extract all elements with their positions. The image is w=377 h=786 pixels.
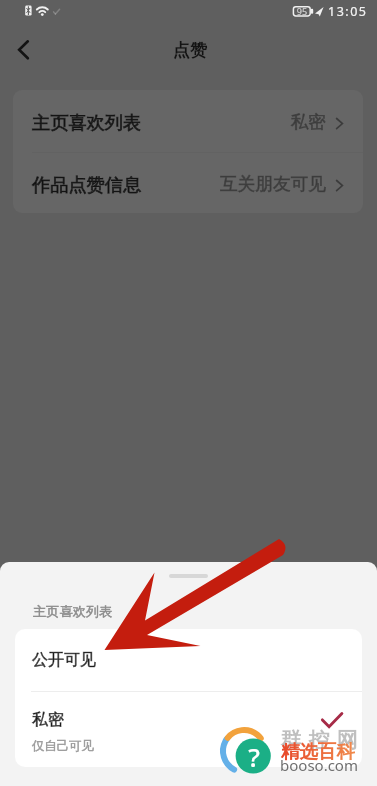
staticText: 主页喜欢列表 (33, 603, 113, 620)
button[interactable]: 公开可见 (15, 629, 362, 691)
button[interactable]: 私密 (15, 692, 362, 767)
staticText: 主页喜欢列表 (32, 111, 142, 134)
staticText: 仅自己可见 (32, 738, 94, 753)
staticText: 私密 (126, 111, 326, 133)
staticText: 点赞 (110, 39, 270, 61)
staticText: 群控网 (277, 727, 361, 753)
button[interactable]: Back (1, 27, 45, 71)
staticText: 私密 (32, 710, 64, 730)
button[interactable]: 作品点赞信息 (13, 152, 363, 213)
staticText: 作品点赞信息 (32, 173, 142, 196)
staticText: 13:05 (328, 3, 368, 20)
staticText: 公开可见 (32, 650, 96, 670)
staticText: 主页喜欢列表 (32, 111, 142, 134)
staticText: 私密 (32, 710, 64, 730)
staticText: 仅自己可见 (32, 738, 94, 753)
staticText: 作品点赞信息 (32, 173, 142, 196)
staticText: 私密 (126, 111, 326, 133)
staticText: 互关朋友可见 (126, 173, 326, 195)
staticText: 95 (292, 5, 312, 17)
button[interactable]: 主页喜欢列表 (13, 90, 363, 152)
staticText: 主页喜欢列表 (33, 603, 113, 620)
staticText: 精选百科 (281, 740, 355, 762)
staticText: 公开可见 (32, 650, 96, 670)
staticText: 互关朋友可见 (126, 173, 326, 195)
staticText: booso.com (280, 755, 358, 775)
staticText: ? (239, 739, 269, 774)
